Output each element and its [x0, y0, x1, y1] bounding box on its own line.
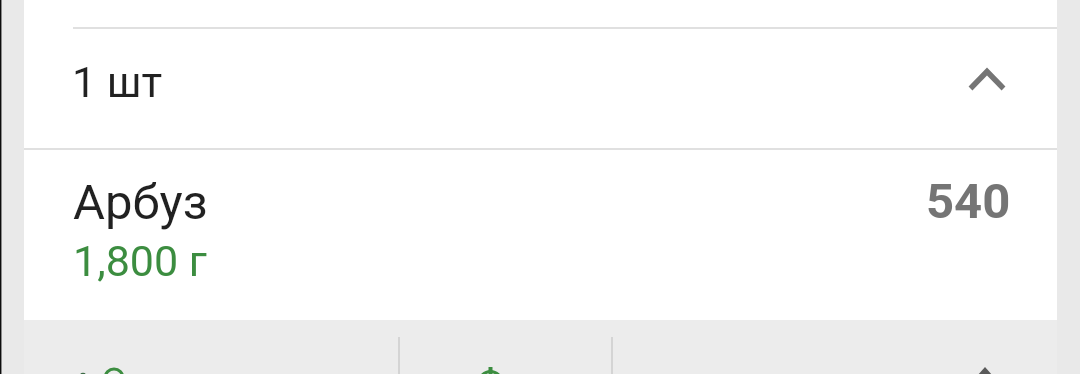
button[interactable]: Expand order summary [613, 320, 1057, 374]
button[interactable]: Арбуз [24, 150, 1057, 321]
button[interactable]: 1 шт [24, 29, 1057, 148]
staticText: 1 шт [72, 57, 163, 107]
staticText: 1,800 г [73, 236, 207, 286]
button[interactable]: Оплата [400, 320, 611, 374]
staticText: 540 [926, 173, 1011, 230]
staticText: Арбуз [73, 174, 208, 231]
button[interactable]: Collapse section [959, 52, 1015, 108]
button[interactable]: Сканировать [24, 320, 398, 374]
